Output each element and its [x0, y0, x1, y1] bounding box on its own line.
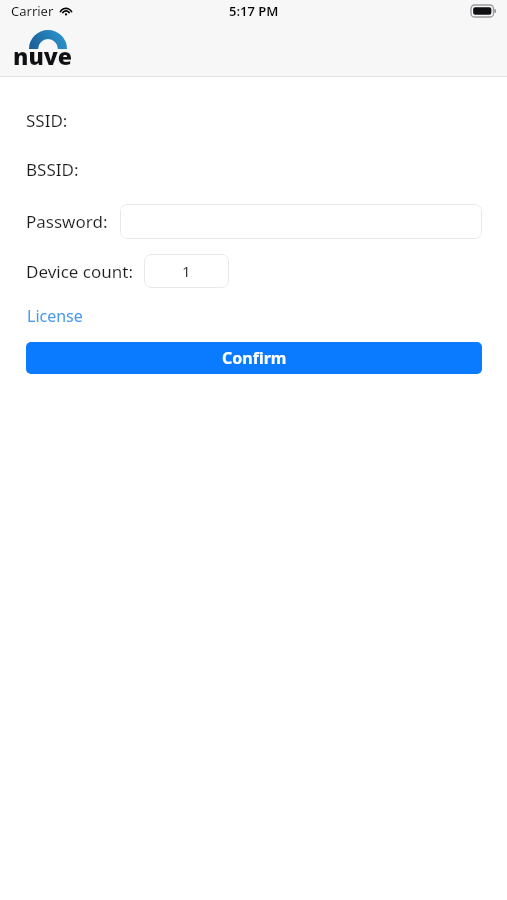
staticText: Carrier: [11, 2, 54, 20]
staticText: BSSID:: [26, 158, 79, 181]
button[interactable]: Confirm: [26, 342, 482, 374]
staticText: Confirm: [222, 347, 287, 369]
staticText: SSID:: [26, 109, 68, 132]
staticText: License: [27, 305, 83, 327]
button[interactable]: Password field: [120, 204, 482, 239]
button[interactable]: License: [26, 303, 84, 329]
staticText: 1: [182, 261, 191, 281]
staticText: Password:: [26, 210, 108, 233]
button[interactable]: Device count field: [144, 254, 229, 288]
staticText: Device count:: [26, 260, 133, 283]
staticText: nuve: [13, 40, 73, 71]
staticText: 5:17 PM: [229, 2, 279, 20]
